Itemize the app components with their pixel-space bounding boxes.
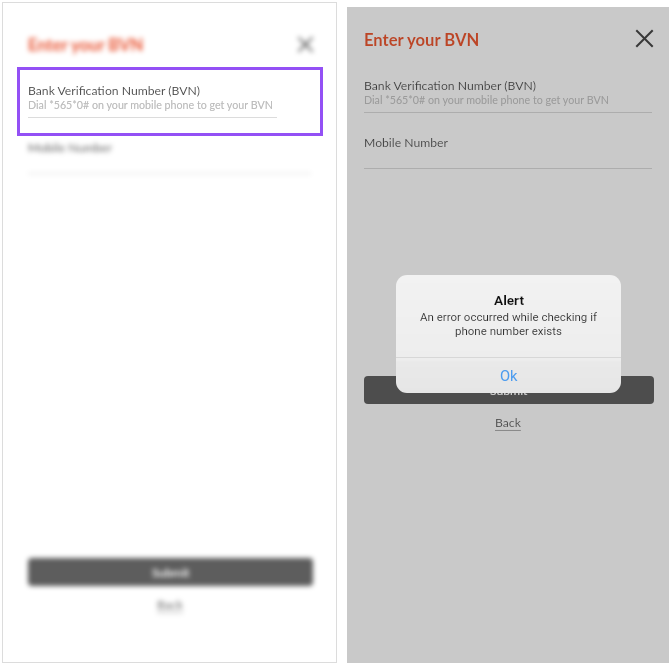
staticText: Bank Verification Number (BVN) xyxy=(28,83,201,98)
button[interactable]: Close xyxy=(631,25,658,52)
staticText: Bank Verification Number (BVN) xyxy=(28,83,201,98)
staticText: Bank Verification Number (BVN) xyxy=(364,78,537,93)
staticText: Enter your BVN xyxy=(28,35,144,55)
button[interactable]: Submit xyxy=(364,376,654,404)
staticText: Submit xyxy=(152,565,190,580)
button[interactable]: Back xyxy=(489,413,527,432)
staticText: Dial *565*0# on your mobile phone to get… xyxy=(364,93,609,106)
staticText: Submit xyxy=(490,383,528,398)
staticText: Enter your BVN xyxy=(364,30,480,50)
button[interactable]: Back xyxy=(151,595,189,614)
staticText: Back xyxy=(495,415,521,430)
staticText: Mobile Number xyxy=(364,135,448,150)
staticText: Ok xyxy=(500,367,518,384)
button[interactable]: Ok xyxy=(396,358,621,393)
staticText: Alert xyxy=(494,292,524,308)
button[interactable]: Submit xyxy=(28,558,313,586)
staticText: Mobile Number xyxy=(28,140,112,155)
staticText: Dial *565*0# on your mobile phone to get… xyxy=(28,98,273,111)
staticText: An error occurred while checking if phon… xyxy=(420,310,597,338)
button[interactable]: Close xyxy=(293,32,318,57)
staticText: Back xyxy=(157,597,183,612)
staticText: Dial *565*0# on your mobile phone to get… xyxy=(28,98,273,111)
